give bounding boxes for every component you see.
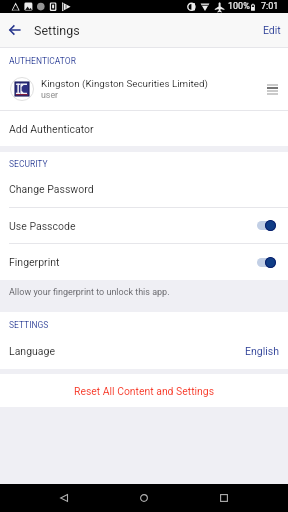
button[interactable]: Kingston (Kingston Securities Limited) <box>0 67 288 110</box>
staticText: Add Authenticator <box>9 123 94 135</box>
staticText: Change Password <box>9 183 94 195</box>
button[interactable]: Back <box>3 18 27 42</box>
button[interactable]: Back <box>50 484 78 512</box>
staticText: Edit <box>263 24 281 36</box>
staticText: SECURITY <box>9 159 48 169</box>
staticText: AUTHENTICATOR <box>9 56 76 66</box>
staticText: Fingerprint <box>9 256 257 268</box>
button[interactable]: Language <box>0 332 288 369</box>
button[interactable]: Use Passcode <box>0 208 288 243</box>
staticText: English <box>245 345 279 357</box>
staticText: Settings <box>34 23 80 38</box>
button[interactable]: Edit <box>263 24 281 36</box>
button[interactable]: Fingerprint <box>0 244 288 280</box>
button[interactable]: Add Authenticator <box>0 111 288 146</box>
staticText: Language <box>9 345 245 357</box>
button[interactable]: Recents <box>210 484 238 512</box>
button[interactable]: Reset All Content and Settings <box>0 374 288 407</box>
staticText: Kingston (Kingston Securities Limited) <box>41 78 208 89</box>
button[interactable]: Home <box>130 484 158 512</box>
staticText: 7:01 <box>261 1 279 12</box>
staticText: SETTINGS <box>9 320 49 330</box>
staticText: 100% <box>228 1 250 12</box>
button[interactable]: Reorder <box>260 77 284 101</box>
staticText: user <box>41 90 59 100</box>
staticText: Allow your fingerprint to unlock this ap… <box>9 287 170 298</box>
button[interactable]: Change Password <box>0 171 288 207</box>
staticText: Reset All Content and Settings <box>74 385 214 397</box>
staticText: Use Passcode <box>9 220 257 232</box>
